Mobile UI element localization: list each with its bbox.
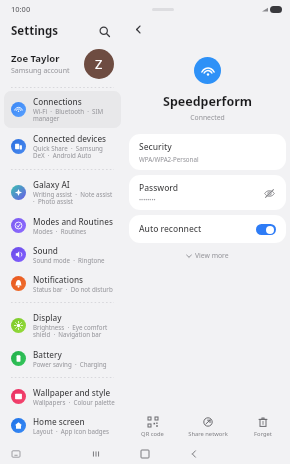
staticText: Share network: [188, 430, 228, 438]
button[interactable]: Wallpaper and style: [4, 382, 121, 411]
staticText: Wi-Fi · Bluetooth · SIM manager: [33, 107, 115, 123]
staticText: Sound mode · Ringtone: [33, 256, 105, 264]
button[interactable]: Back: [129, 20, 147, 38]
button[interactable]: Auto reconnect: [129, 215, 286, 243]
staticText: Samsung account: [11, 66, 70, 76]
button[interactable]: Notifications: [4, 269, 121, 298]
button[interactable]: Modes and Routines: [4, 211, 121, 240]
staticText: Modes and Routines: [33, 216, 113, 227]
staticText: 10:00: [11, 4, 31, 14]
button[interactable]: Search: [95, 22, 113, 40]
button[interactable]: Display: [4, 307, 121, 344]
button[interactable]: Show password: [262, 186, 276, 200]
staticText: Display: [33, 312, 62, 323]
button[interactable]: Home: [137, 446, 153, 462]
button[interactable]: Security: [129, 134, 286, 170]
staticText: Layout · App icon badges: [33, 427, 110, 435]
button[interactable]: Galaxy AI: [4, 174, 121, 211]
button[interactable]: Keyboard: [10, 448, 22, 460]
button[interactable]: View more: [125, 251, 290, 260]
staticText: Quick Share · Samsung DeX · Android Auto: [33, 144, 115, 160]
staticText: Zoe Taylor: [11, 52, 60, 65]
staticText: Forget: [254, 430, 272, 438]
staticText: Power saving · Charging: [33, 360, 107, 368]
staticText: View more: [195, 251, 229, 260]
staticText: Modes · Routines: [33, 227, 87, 235]
staticText: WPA/WPA2-Personal: [139, 155, 199, 163]
staticText: Brightness · Eye comfort shield · Naviga…: [33, 323, 115, 339]
button[interactable]: Home screen: [4, 411, 121, 440]
staticText: Connections: [33, 96, 82, 107]
staticText: Speedperform: [125, 93, 290, 110]
staticText: Galaxy AI: [33, 179, 70, 190]
button[interactable]: Auto reconnect toggle: [256, 224, 276, 235]
staticText: Wallpapers · Colour palette: [33, 398, 115, 406]
staticText: Connected: [125, 113, 290, 122]
button[interactable]: Connections: [4, 91, 121, 128]
staticText: Z: [95, 55, 103, 73]
staticText: Notifications: [33, 274, 83, 285]
staticText: Settings: [11, 23, 59, 39]
button[interactable]: Password: [129, 175, 286, 210]
staticText: Wallpaper and style: [33, 387, 111, 398]
staticText: Writing assist · Note assist · Photo ass…: [33, 190, 115, 206]
button[interactable]: Sound: [4, 240, 121, 269]
staticText: Status bar · Do not disturb: [33, 285, 113, 293]
button[interactable]: Back: [186, 446, 202, 462]
staticText: Battery: [33, 349, 62, 360]
button[interactable]: Connected devices: [4, 128, 121, 165]
staticText: Connected devices: [33, 133, 107, 144]
staticText: Auto reconnect: [139, 223, 256, 235]
button[interactable]: Forget: [235, 415, 290, 440]
staticText: Sound: [33, 245, 58, 256]
staticText: Password: [139, 182, 179, 194]
button[interactable]: Zoe Taylor: [0, 44, 125, 84]
button[interactable]: QR code: [125, 415, 180, 440]
staticText: Security: [139, 141, 172, 153]
button[interactable]: Battery: [4, 344, 121, 373]
button[interactable]: Recents: [88, 446, 104, 462]
staticText: QR code: [141, 430, 164, 438]
staticText: Home screen: [33, 416, 85, 427]
staticText: ••••••••: [139, 196, 156, 203]
button[interactable]: Share network: [180, 415, 235, 440]
